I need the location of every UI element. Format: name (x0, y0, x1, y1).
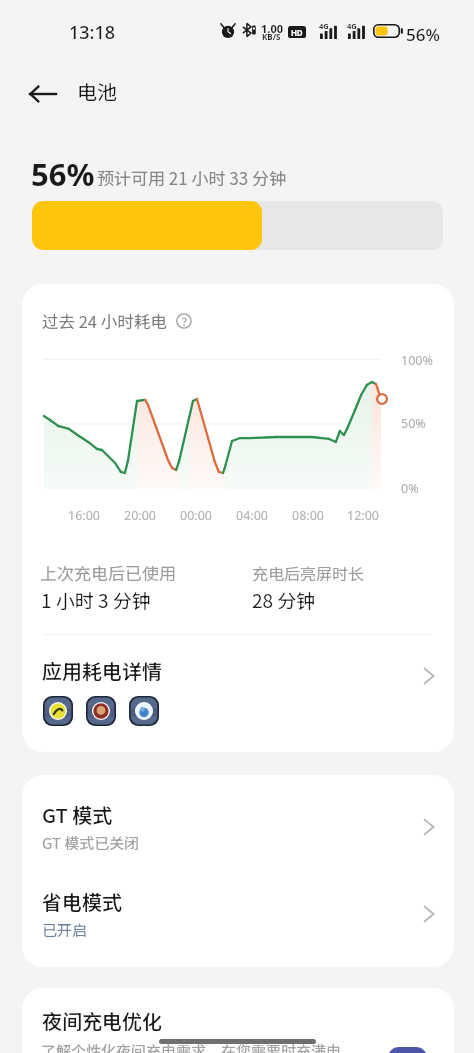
staticText: ? (182, 314, 187, 329)
staticText: KB/S (262, 31, 281, 42)
staticText: 12:00 (347, 507, 379, 524)
staticText: GT 模式 (42, 800, 113, 829)
staticText: 1.00 (261, 21, 283, 36)
staticText: 1 小时 3 分钟 (41, 586, 151, 614)
staticText: HD (291, 27, 303, 38)
staticText: 4G (319, 21, 329, 31)
staticText: 56% (406, 23, 440, 46)
staticText: 应用耗电详情 (42, 656, 162, 685)
staticText: 16:00 (68, 507, 100, 524)
staticText: 20:00 (124, 507, 156, 524)
staticText: 56% (31, 153, 95, 195)
staticText: 省电模式 (42, 887, 122, 916)
staticText: 上次充电后已使用 (40, 560, 176, 585)
staticText: 0% (401, 480, 419, 497)
button[interactable]: Back (21, 72, 65, 116)
staticText: 充电后亮屏时长 (252, 561, 365, 584)
staticText: 预计可用 21 小时 33 分钟 (97, 165, 286, 190)
staticText: 04:00 (236, 507, 268, 524)
button[interactable]: 省电模式 (22, 871, 454, 967)
button[interactable]: GT 模式 (22, 775, 454, 871)
staticText: 电池 (77, 77, 117, 106)
staticText: 了解个性化夜间充电需求，在您需要时充满电 (41, 1040, 342, 1053)
staticText: 已开启 (42, 919, 88, 941)
staticText: 100% (401, 352, 433, 369)
button[interactable]: Toggle night charging optimisation (388, 1047, 427, 1053)
staticText: GT 模式已关闭 (42, 832, 140, 854)
staticText: 过去 24 小时耗电 (42, 309, 167, 333)
staticText: 00:00 (180, 507, 212, 524)
staticText: 50% (401, 415, 426, 432)
staticText: 4G (347, 21, 357, 31)
staticText: 夜间充电优化 (42, 1006, 162, 1035)
staticText: 13:18 (69, 20, 116, 45)
staticText: 08:00 (292, 507, 324, 524)
staticText: 28 分钟 (252, 586, 316, 614)
button[interactable]: 应用耗电详情 (22, 635, 454, 752)
